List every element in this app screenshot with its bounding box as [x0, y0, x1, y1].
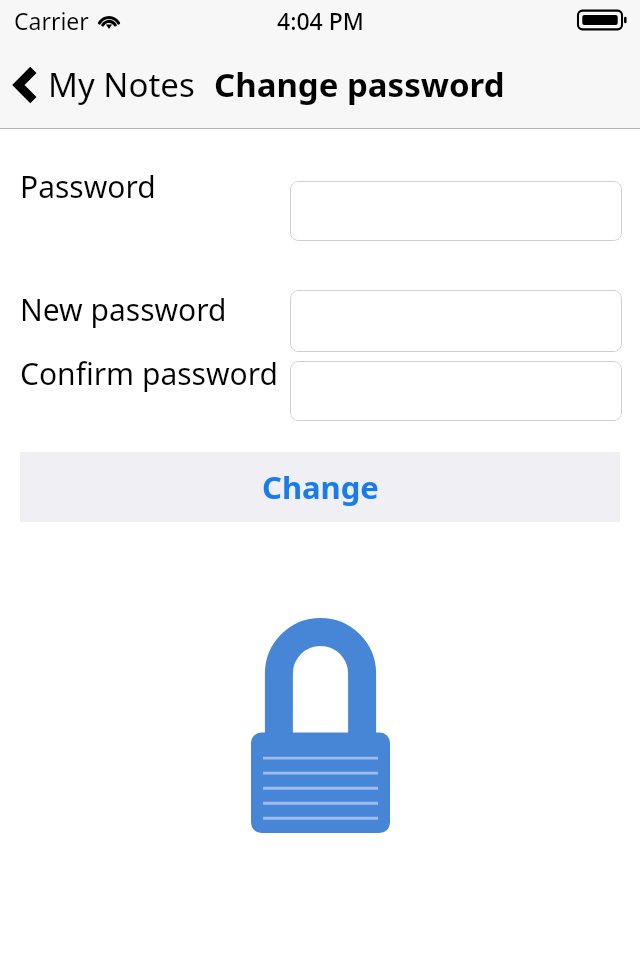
button[interactable]: Back — [0, 54, 203, 115]
staticText: Carrier — [14, 5, 89, 36]
staticText: Change — [262, 466, 379, 508]
staticText: New password — [20, 289, 227, 330]
other: Back — [14, 66, 36, 104]
button[interactable]: Password input field — [290, 361, 622, 421]
button[interactable]: Password input field — [290, 181, 622, 241]
staticText: 4:04 PM — [277, 5, 364, 36]
button[interactable]: Password input field — [290, 290, 622, 352]
staticText: Password — [20, 166, 156, 207]
staticText: Change password — [214, 62, 505, 107]
staticText: Confirm password — [20, 353, 278, 394]
button[interactable]: Change — [20, 452, 620, 522]
staticText: My Notes — [48, 62, 195, 107]
other: Lock — [251, 618, 390, 833]
